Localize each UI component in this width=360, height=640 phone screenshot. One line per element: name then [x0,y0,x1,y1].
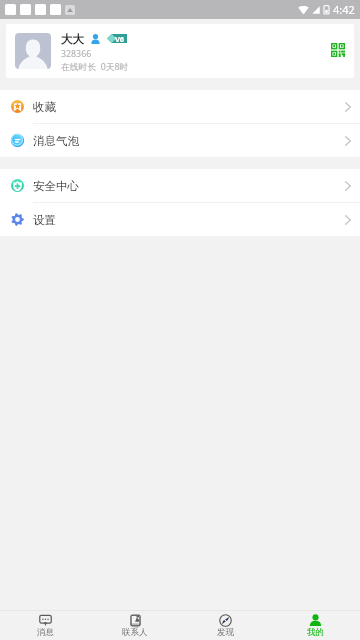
staticText: 发现 [217,627,234,638]
button[interactable]: 收藏 [0,90,360,123]
staticText: 我的 [307,627,324,638]
button[interactable]: 消息气泡 [0,124,360,157]
staticText: 收藏 [33,100,56,114]
button[interactable]: 联系人 [90,611,180,640]
button[interactable]: Scan QR code [327,39,349,61]
staticText: 联系人 [122,627,148,638]
staticText: V6 [115,34,125,43]
button[interactable]: 发现 [180,611,270,640]
staticText: 安全中心 [33,179,79,193]
button[interactable]: 大大 [6,24,354,78]
staticText: 设置 [33,213,56,227]
staticText: 消息 [37,627,54,638]
staticText: 328366 [61,48,92,60]
staticText: 大大 [61,32,84,46]
button[interactable]: 消息 [0,611,90,640]
staticText: 消息气泡 [33,134,79,148]
button[interactable]: 设置 [0,203,360,236]
staticText: 4:42 [333,2,355,17]
button[interactable]: 我的 [270,611,360,640]
button[interactable]: 安全中心 [0,169,360,202]
staticText: 在线时长 0天8时 [61,61,129,73]
